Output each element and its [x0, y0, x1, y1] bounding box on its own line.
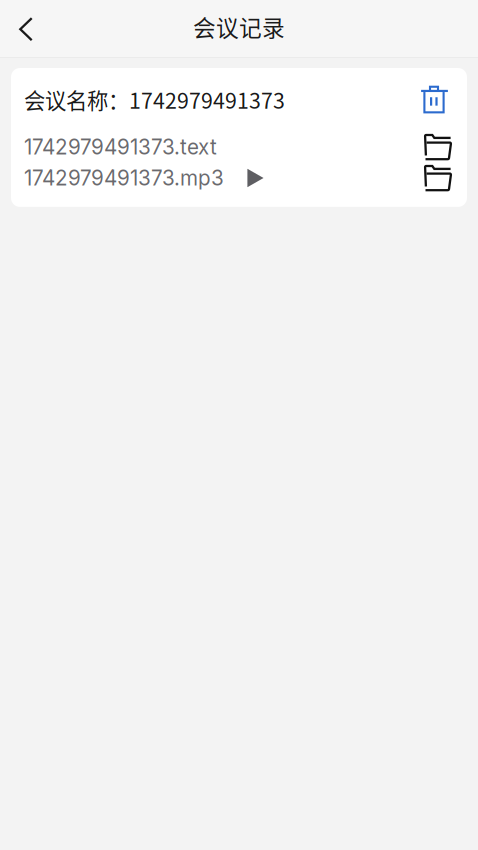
- staticText: 1742979491373.mp3: [24, 165, 224, 190]
- staticText: 1742979491373.text: [24, 134, 217, 159]
- button[interactable]: Back: [0, 0, 52, 58]
- button[interactable]: Open text file location: [424, 134, 454, 160]
- button[interactable]: Open audio file location: [424, 165, 454, 191]
- staticText: 会议名称：1742979491373: [24, 84, 285, 115]
- button[interactable]: Delete recording: [420, 85, 454, 113]
- button[interactable]: Play recording: [224, 168, 264, 187]
- staticText: 会议记录: [193, 10, 285, 43]
